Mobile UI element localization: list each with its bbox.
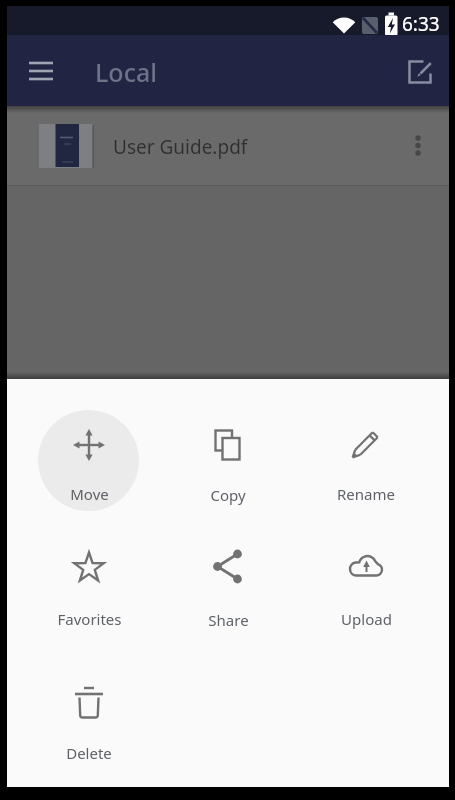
- button[interactable]: Copy: [159, 423, 297, 511]
- staticText: Upload: [341, 609, 392, 629]
- staticText: Delete: [66, 743, 112, 763]
- staticText: User Guide.pdf: [113, 134, 248, 160]
- button[interactable]: Rename: [297, 422, 435, 510]
- button[interactable]: Delete: [20, 681, 158, 769]
- button[interactable]: [7, 106, 449, 185]
- button[interactable]: [14, 47, 68, 95]
- staticText: Local: [95, 55, 157, 89]
- staticText: Share: [208, 610, 249, 630]
- staticText: Move: [70, 484, 109, 504]
- staticText: 6:33: [402, 11, 440, 35]
- button[interactable]: Upload: [297, 544, 435, 635]
- button[interactable]: Share: [159, 544, 297, 636]
- button[interactable]: Favorites: [20, 545, 158, 635]
- staticText: Copy: [210, 485, 246, 505]
- button[interactable]: [396, 48, 444, 96]
- button[interactable]: Move: [20, 423, 158, 510]
- staticText: Favorites: [57, 609, 122, 629]
- staticText: Rename: [337, 484, 395, 504]
